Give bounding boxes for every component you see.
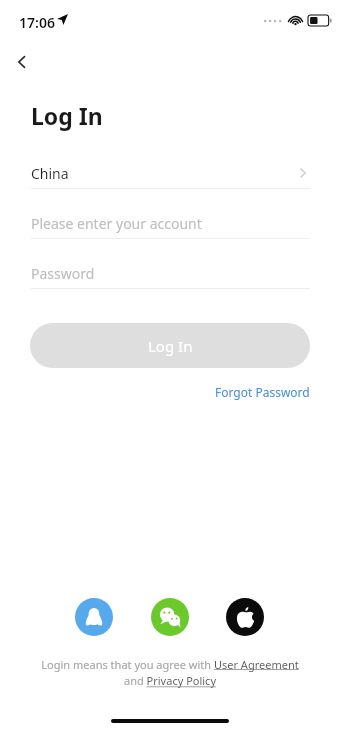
button[interactable]: Forgot Password bbox=[205, 382, 310, 402]
staticText: Log In bbox=[31, 100, 103, 131]
button[interactable]: Log in with WeChat bbox=[151, 598, 189, 636]
staticText: 17:06 bbox=[19, 13, 55, 32]
staticText: Forgot Password bbox=[215, 384, 310, 400]
button[interactable]: China bbox=[31, 158, 310, 188]
button[interactable]: Log in with QQ bbox=[75, 598, 113, 636]
staticText: Please enter your account bbox=[31, 214, 202, 233]
staticText: Login means that you agree with User Agr… bbox=[40, 657, 300, 689]
staticText: Password bbox=[31, 264, 95, 283]
button[interactable]: Back bbox=[4, 44, 40, 80]
button[interactable]: Please enter your account bbox=[31, 208, 310, 238]
button[interactable]: Log In bbox=[30, 323, 310, 368]
button[interactable]: Log in with Apple bbox=[226, 598, 264, 636]
staticText: Log In bbox=[148, 336, 193, 356]
button[interactable]: Password bbox=[31, 258, 310, 288]
button[interactable]: Login means that you agree with User Agr… bbox=[40, 657, 300, 689]
staticText: China bbox=[31, 164, 69, 183]
